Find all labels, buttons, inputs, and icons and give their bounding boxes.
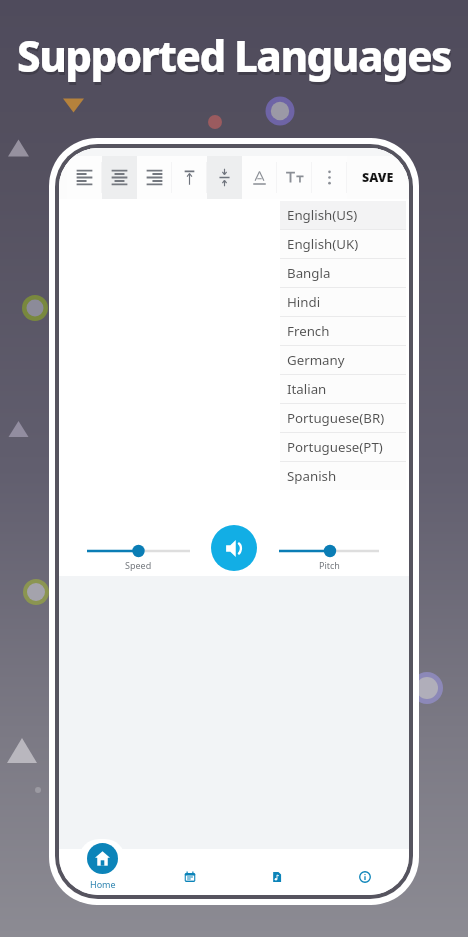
button[interactable]: SAVE bbox=[347, 156, 409, 199]
button[interactable]: Notes bbox=[146, 843, 233, 895]
button[interactable]: Align right bbox=[137, 156, 172, 199]
button[interactable]: Bangla bbox=[280, 259, 406, 287]
button[interactable]: English(UK) bbox=[280, 230, 406, 258]
staticText: Hindi bbox=[287, 293, 321, 311]
button[interactable]: Align centre bbox=[102, 156, 137, 199]
staticText: Pitch bbox=[319, 559, 340, 571]
button[interactable]: Italian bbox=[280, 375, 406, 403]
staticText: Home bbox=[90, 878, 116, 890]
staticText: Italian bbox=[287, 380, 327, 398]
button[interactable]: Portuguese(BR) bbox=[280, 404, 406, 432]
staticText: French bbox=[287, 322, 330, 340]
button[interactable]: Speak bbox=[211, 525, 257, 571]
button[interactable]: Line spacing bbox=[207, 156, 242, 199]
button[interactable]: Hindi bbox=[280, 288, 406, 316]
staticText: Bangla bbox=[287, 264, 331, 282]
button[interactable]: Home bbox=[59, 843, 146, 895]
button[interactable]: Font size bbox=[277, 156, 312, 199]
staticText: SAVE bbox=[362, 169, 394, 186]
button[interactable]: Text colour bbox=[242, 156, 277, 199]
staticText: Portuguese(PT) bbox=[287, 438, 383, 456]
button[interactable]: More options bbox=[312, 156, 347, 199]
staticText: Supported Languages bbox=[18, 30, 452, 87]
button[interactable]: Align left bbox=[67, 156, 102, 199]
staticText: Supported Languages bbox=[17, 27, 451, 84]
button[interactable]: Germany bbox=[280, 346, 406, 374]
staticText: Spanish bbox=[287, 467, 337, 485]
button[interactable]: English(US) bbox=[280, 201, 406, 229]
button[interactable]: Spanish bbox=[280, 462, 406, 490]
staticText: Germany bbox=[287, 351, 345, 369]
staticText: English(US) bbox=[287, 206, 358, 224]
button[interactable]: Information bbox=[321, 843, 409, 895]
staticText: English(UK) bbox=[287, 235, 359, 253]
staticText: Speed bbox=[125, 559, 152, 571]
staticText: Portuguese(BR) bbox=[287, 409, 385, 427]
button[interactable]: French bbox=[280, 317, 406, 345]
button[interactable]: Move up bbox=[172, 156, 207, 199]
button[interactable]: Audio files bbox=[233, 843, 321, 895]
button[interactable]: Portuguese(PT) bbox=[280, 433, 406, 461]
